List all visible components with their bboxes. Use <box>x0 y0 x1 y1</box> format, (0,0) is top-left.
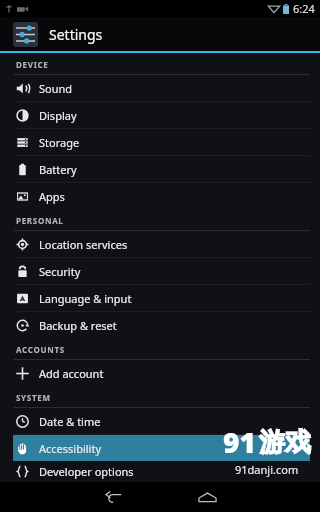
staticText: Developer options <box>39 464 134 479</box>
staticText: Accessibility <box>39 441 102 456</box>
staticText: 91danji.com <box>235 462 299 477</box>
staticText: Apps <box>39 189 65 204</box>
staticText: 91 <box>223 423 256 461</box>
staticText: Sound <box>39 81 73 96</box>
button[interactable]: Storage <box>0 129 320 155</box>
staticText: Backup & reset <box>39 318 117 333</box>
button[interactable]: Date & time <box>0 408 320 434</box>
button[interactable]: Security <box>0 258 320 284</box>
staticText: Date & time <box>39 414 101 429</box>
button[interactable]: Apps <box>0 183 320 209</box>
button[interactable]: Battery <box>0 156 320 182</box>
button[interactable]: Language & input <box>0 285 320 311</box>
staticText: Display <box>39 108 77 123</box>
staticText: Language & input <box>39 291 132 306</box>
staticText: Battery <box>39 162 77 177</box>
button[interactable]: Developer options <box>0 461 320 482</box>
staticText: DEVICE <box>16 59 49 70</box>
button[interactable]: Backup & reset <box>0 312 320 338</box>
staticText: 游戏 <box>259 426 311 459</box>
button[interactable]: Location services <box>0 231 320 257</box>
staticText: Location services <box>39 237 128 252</box>
button[interactable]: Back <box>90 482 136 512</box>
button[interactable]: Display <box>0 102 320 128</box>
button[interactable]: Settings <box>0 17 320 51</box>
staticText: Add account <box>39 366 104 381</box>
button[interactable]: Add account <box>0 360 320 386</box>
staticText: 6:24 <box>293 1 315 16</box>
button[interactable]: Home <box>184 482 230 512</box>
staticText: Security <box>39 264 81 279</box>
staticText: Settings <box>49 25 103 44</box>
staticText: SYSTEM <box>16 392 51 403</box>
button[interactable]: Accessibility <box>13 435 310 461</box>
staticText: Storage <box>39 135 80 150</box>
staticText: ACCOUNTS <box>16 344 65 355</box>
staticText: PERSONAL <box>16 215 64 226</box>
button[interactable]: Sound <box>0 75 320 101</box>
